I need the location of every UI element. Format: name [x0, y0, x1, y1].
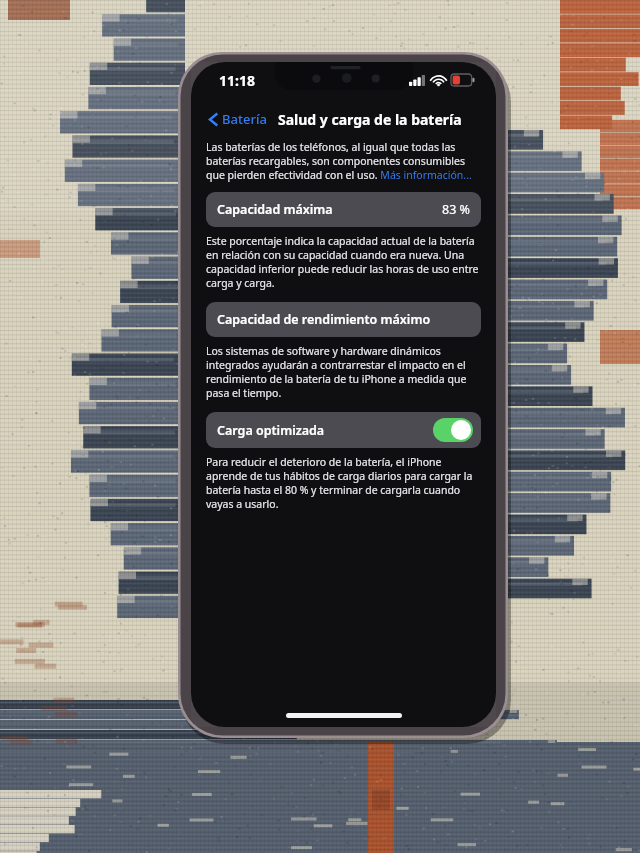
staticText: Este porcentaje indica la capacidad actu…	[206, 234, 481, 290]
staticText: Los sistemas de software y hardware diná…	[206, 344, 481, 400]
staticText: 11:18	[219, 71, 255, 90]
staticText: Para reducir el deterioro de la batería,…	[206, 455, 481, 511]
staticText: Capacidad máxima	[217, 201, 333, 218]
staticText: Carga optimizada	[217, 422, 325, 439]
button[interactable]: Carga optimizada activada	[433, 418, 473, 442]
button[interactable]: Carga optimizada	[206, 412, 481, 448]
button[interactable]: Batería	[205, 108, 271, 130]
button[interactable]: Capacidad de rendimiento máximo	[206, 302, 481, 337]
staticText: Batería	[222, 110, 267, 128]
staticText: 83 %	[442, 201, 470, 218]
staticText: Capacidad de rendimiento máximo	[217, 311, 431, 328]
staticText: Salud y carga de la batería	[278, 110, 462, 129]
button[interactable]: Capacidad máxima	[206, 192, 481, 227]
staticText: Las baterías de los teléfonos, al igual …	[206, 140, 481, 182]
